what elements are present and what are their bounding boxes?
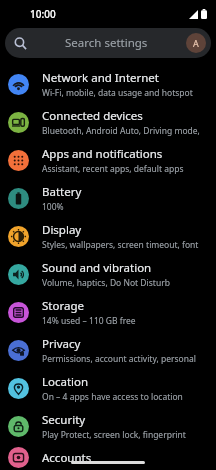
- button[interactable]: Location: [0, 369, 216, 407]
- other: Search: [14, 37, 27, 50]
- staticText: Wi-Fi, mobile, data usage and hotspot: [42, 87, 193, 99]
- button[interactable]: Sound and vibration: [0, 255, 216, 293]
- button[interactable]: Display: [0, 217, 216, 255]
- button[interactable]: Storage: [0, 293, 216, 331]
- staticText: Permissions, account activity, personal …: [42, 353, 210, 365]
- staticText: Apps and notifications: [42, 146, 163, 162]
- staticText: Play Protect, screen lock, fingerprint: [42, 429, 186, 441]
- staticText: Storage: [42, 298, 84, 314]
- staticText: Assistant, recent apps, default apps: [42, 163, 184, 175]
- button[interactable]: Privacy: [0, 331, 216, 369]
- staticText: 100%: [42, 201, 64, 213]
- button[interactable]: Battery: [0, 179, 216, 217]
- staticText: Styles, wallpapers, screen timeout, font…: [42, 239, 210, 251]
- staticText: Volume, haptics, Do Not Disturb: [42, 277, 170, 289]
- button[interactable]: Apps and notifications: [0, 141, 216, 179]
- staticText: Connected devices: [42, 108, 143, 124]
- staticText: 10:00: [30, 7, 56, 21]
- staticText: Battery: [42, 184, 82, 200]
- staticText: 14% used – 110 GB free: [42, 315, 136, 327]
- staticText: Display: [42, 222, 82, 238]
- staticText: On – 4 apps have access to location: [42, 391, 183, 403]
- staticText: Security: [42, 412, 86, 428]
- staticText: Privacy: [42, 336, 81, 352]
- staticText: Sound and vibration: [42, 260, 152, 276]
- button[interactable]: Security: [0, 407, 216, 445]
- staticText: Network and Internet: [42, 70, 160, 86]
- button[interactable]: Search: [5, 28, 211, 58]
- button[interactable]: Accounts: [0, 445, 216, 470]
- staticText: Bluetooth, Android Auto, Driving mode, N…: [42, 125, 210, 137]
- staticText: Search settings: [65, 35, 148, 51]
- staticText: Location: [42, 374, 89, 390]
- button[interactable]: Network and Internet: [0, 65, 216, 103]
- button[interactable]: Connected devices: [0, 103, 216, 141]
- staticText: Accounts: [42, 450, 92, 466]
- staticText: A: [193, 37, 199, 49]
- button[interactable]: Account: [186, 33, 206, 53]
